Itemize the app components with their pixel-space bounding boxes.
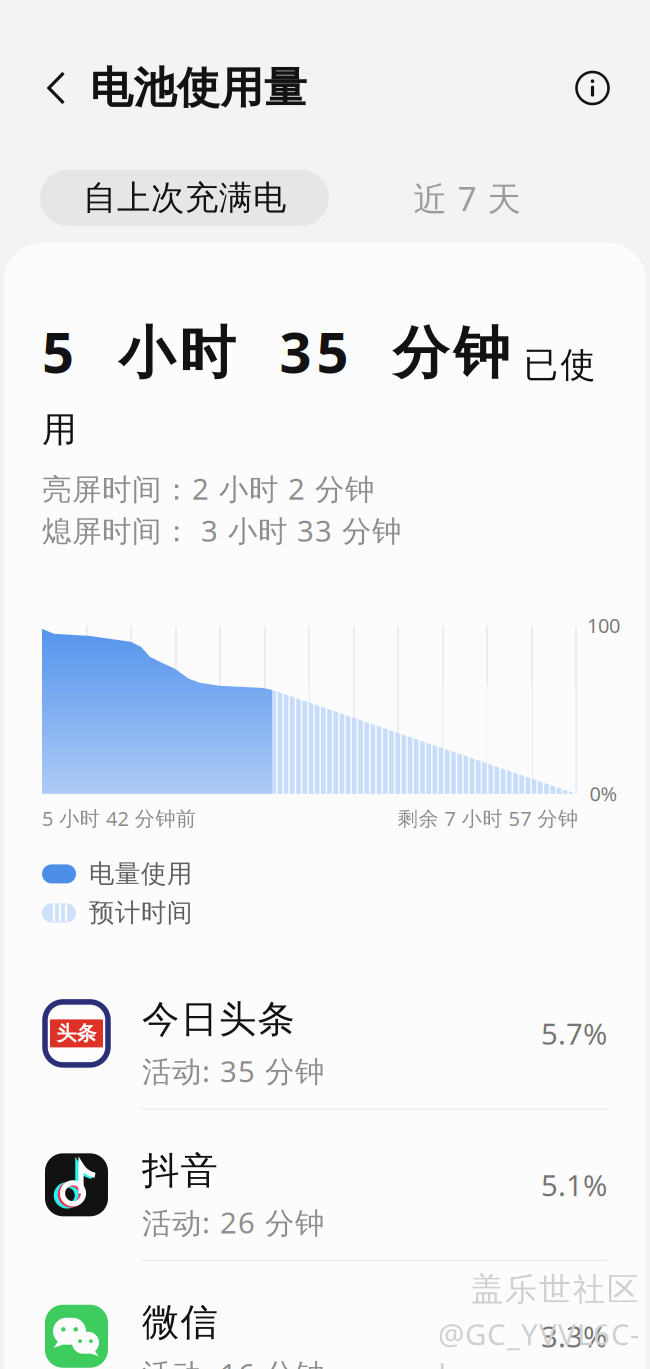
button[interactable]: 自上次充满电 (40, 170, 329, 226)
staticText: 抖音 (142, 1148, 217, 1194)
button[interactable]: 近 7 天 (329, 170, 605, 226)
staticText: 头条 (56, 1021, 96, 1046)
staticText: 今日头条 (142, 996, 294, 1042)
staticText: 剩余 7 小时 57 分钟 (398, 805, 578, 831)
staticText: 亮屏时间：2 小时 2 分钟 (42, 469, 374, 508)
button[interactable]: Information (576, 48, 650, 128)
staticText: 盖乐世社区 (471, 1270, 639, 1309)
button[interactable]: 头条 (0, 958, 650, 1108)
staticText: 微信 (142, 1299, 217, 1345)
staticText: 用 (42, 408, 77, 451)
staticText: 活动: 26 分钟 (142, 1203, 324, 1242)
staticText: 0% (589, 780, 617, 807)
staticText: 近 7 天 (413, 176, 520, 220)
button[interactable]: 微信 (0, 1261, 650, 1369)
staticText: 100 (587, 612, 620, 638)
button[interactable]: 抖音 (0, 1110, 650, 1260)
staticText: 电量使用 (89, 858, 192, 889)
staticText: 活动: 16 分钟 (142, 1354, 324, 1369)
staticText: 5.7% (541, 1014, 607, 1053)
staticText: 活动: 35 分钟 (142, 1051, 324, 1090)
staticText: 5 小时 35 分钟 (42, 314, 510, 388)
staticText: @GC_YVVL6CL (438, 1314, 639, 1369)
staticText: 自上次充满电 (83, 177, 286, 218)
button[interactable]: Back (0, 48, 90, 128)
staticText: 5 小时 42 分钟前 (42, 805, 196, 831)
staticText: 已使 (524, 344, 596, 386)
staticText: 5.1% (541, 1165, 607, 1204)
staticText: 熄屏时间： 3 小时 33 分钟 (42, 511, 401, 550)
staticText: 电池使用量 (90, 62, 307, 114)
staticText: 3.3% (541, 1317, 607, 1356)
staticText: 预计时间 (89, 897, 192, 928)
